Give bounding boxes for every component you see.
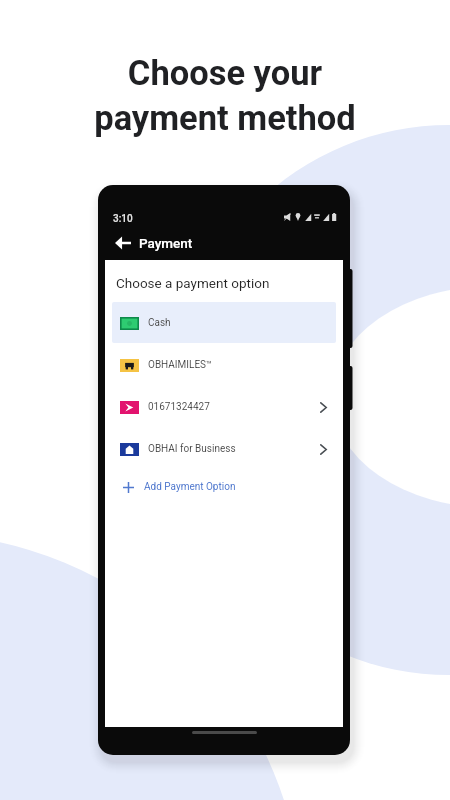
staticText: Payment: [139, 235, 193, 251]
button[interactable]: OBHAI for Business: [105, 428, 343, 470]
button[interactable]: Back: [112, 232, 134, 254]
button[interactable]: 01671324427: [105, 386, 343, 428]
staticText: Choose your payment method: [94, 53, 356, 138]
staticText: OBHAI for Business: [148, 443, 236, 455]
button[interactable]: OBHAIMILES™: [105, 344, 343, 386]
staticText: 3:10: [113, 213, 133, 225]
staticText: 01671324427: [148, 401, 210, 413]
button[interactable]: Cash: [105, 302, 343, 344]
button[interactable]: Add Payment Option: [105, 466, 343, 508]
staticText: OBHAIMILES™: [148, 359, 213, 371]
staticText: Add Payment Option: [144, 481, 236, 493]
staticText: Cash: [148, 317, 171, 329]
staticText: Choose a payment option: [116, 275, 270, 291]
